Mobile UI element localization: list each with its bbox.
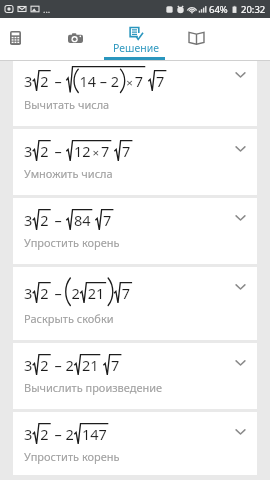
button[interactable]: Умножить числа	[13, 129, 257, 195]
other: Expand	[235, 69, 246, 80]
staticText: Вычитать числа	[24, 97, 110, 112]
staticText: Упростить корень	[24, 235, 120, 250]
staticText: Вычислить произведение	[24, 380, 163, 395]
staticText: Решение	[113, 41, 159, 55]
staticText: Умножить числа	[24, 166, 113, 181]
button[interactable]: Calculator	[0, 18, 45, 60]
other: Expand	[235, 426, 246, 437]
button[interactable]: Раскрыть скобки	[13, 267, 257, 340]
button[interactable]: Camera	[45, 18, 105, 60]
staticText: Упростить корень	[24, 449, 120, 464]
button[interactable]: Вычислить произведение	[13, 343, 257, 409]
button[interactable]: Вычитать числа	[13, 60, 257, 126]
button[interactable]: Решение	[105, 18, 166, 60]
other: Expand	[235, 357, 246, 368]
staticText: 64%	[209, 3, 228, 16]
button[interactable]: Упростить корень	[13, 412, 257, 475]
other: Expand	[235, 281, 246, 292]
button[interactable]: Упростить корень	[13, 198, 257, 264]
staticText: 20:32	[241, 3, 266, 16]
other: Expand	[235, 212, 246, 223]
other: Expand	[235, 143, 246, 154]
staticText: Раскрыть скобки	[24, 311, 114, 326]
button[interactable]: Book	[166, 18, 226, 60]
staticText: ...	[43, 3, 51, 15]
